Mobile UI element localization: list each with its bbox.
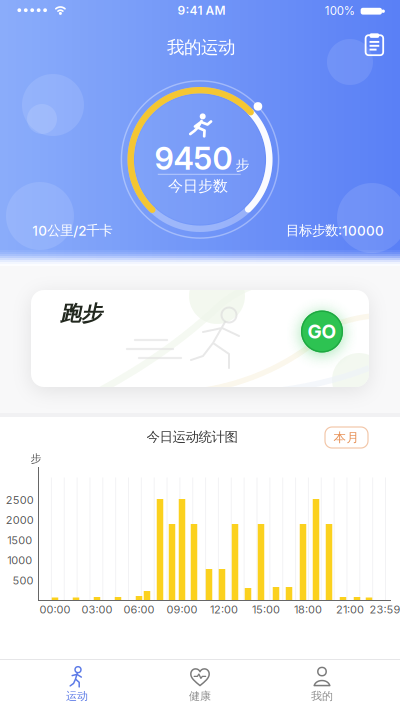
staticText: 18:00 bbox=[294, 603, 322, 616]
staticText: 1500 bbox=[7, 533, 32, 547]
button[interactable]: 运动 bbox=[27, 660, 127, 708]
staticText: 目标步数:10000 bbox=[286, 222, 384, 239]
staticText: 运动 bbox=[66, 689, 88, 703]
staticText: 我的运动 bbox=[167, 36, 235, 58]
staticText: 2000 bbox=[6, 513, 34, 527]
staticText: GO bbox=[307, 320, 336, 343]
staticText: 06:00 bbox=[123, 603, 154, 616]
staticText: 今日步数 bbox=[168, 177, 228, 195]
staticText: 500 bbox=[12, 574, 33, 587]
staticText: 2500 bbox=[6, 493, 34, 507]
staticText: 12:00 bbox=[210, 603, 238, 616]
staticText: 9:41 AM bbox=[177, 3, 225, 17]
staticText: 09:00 bbox=[166, 603, 197, 616]
button[interactable]: 运动记录 bbox=[357, 28, 391, 62]
staticText: 本月 bbox=[333, 430, 359, 445]
staticText: 21:00 bbox=[336, 603, 364, 616]
button[interactable]: 健康 bbox=[150, 660, 250, 708]
staticText: 我的 bbox=[311, 689, 333, 703]
button[interactable]: 我的 bbox=[272, 660, 372, 708]
button[interactable]: 本月 bbox=[325, 427, 368, 448]
staticText: 10公里/2千卡 bbox=[32, 222, 112, 239]
staticText: 健康 bbox=[189, 689, 211, 703]
staticText: 今日运动统计图 bbox=[146, 428, 237, 445]
staticText: 23:59 bbox=[369, 603, 400, 616]
staticText: 9450 bbox=[154, 140, 232, 177]
staticText: 跑步 bbox=[59, 300, 101, 327]
staticText: 步 bbox=[235, 156, 249, 174]
staticText: 00:00 bbox=[39, 603, 70, 616]
staticText: 03:00 bbox=[81, 603, 112, 616]
staticText: 15:00 bbox=[252, 603, 280, 616]
staticText: 1000 bbox=[7, 554, 32, 567]
staticText: 100% bbox=[325, 4, 355, 18]
staticText: 步 bbox=[30, 452, 41, 465]
button[interactable]: 跑步 bbox=[31, 290, 369, 387]
